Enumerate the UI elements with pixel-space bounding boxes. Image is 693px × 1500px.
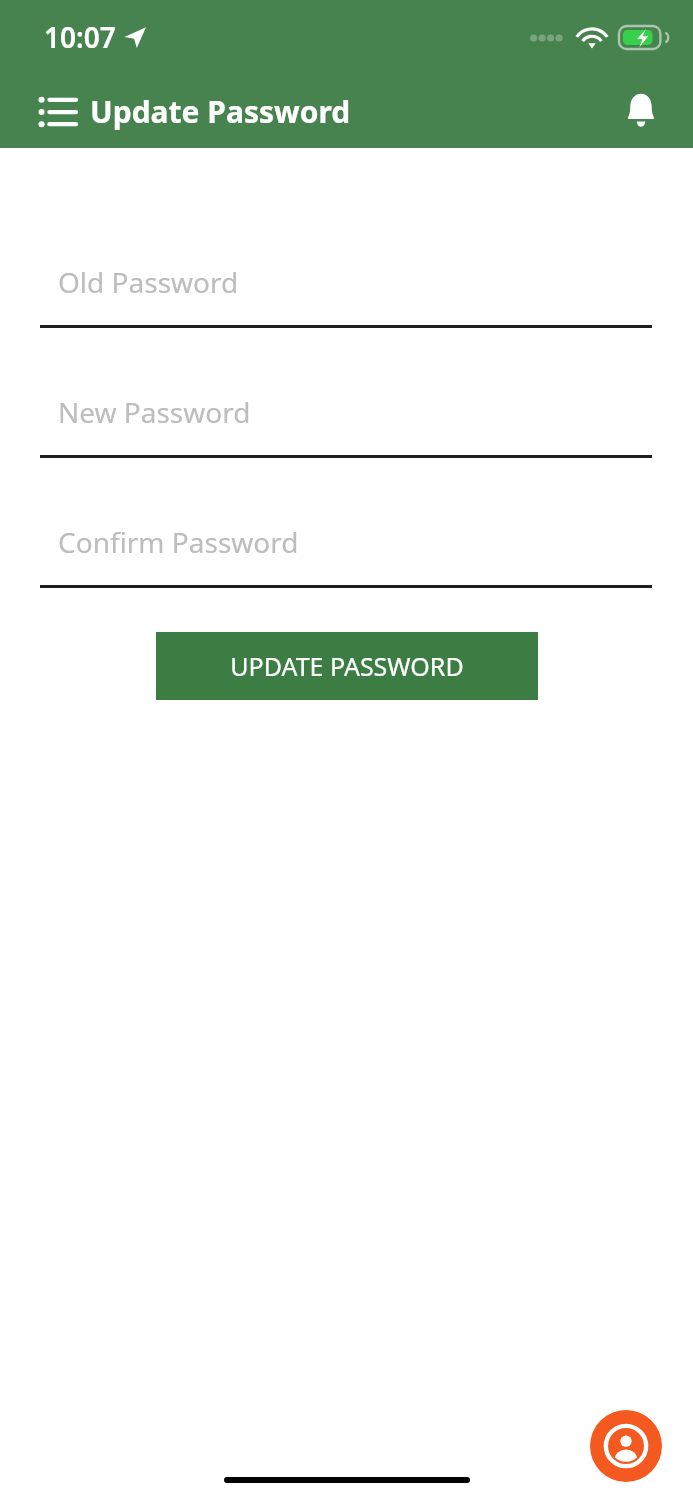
- staticText: Old Password: [58, 263, 239, 301]
- button[interactable]: New Password: [0, 383, 693, 458]
- staticText: UPDATE PASSWORD: [230, 649, 464, 683]
- staticText: New Password: [58, 393, 251, 431]
- button[interactable]: Confirm Password: [0, 513, 693, 588]
- staticText: Update Password: [90, 91, 351, 132]
- button[interactable]: Menu: [30, 83, 359, 140]
- button[interactable]: Notifications: [613, 81, 669, 141]
- staticText: 10:07: [44, 18, 116, 56]
- staticText: Confirm Password: [58, 523, 299, 561]
- button[interactable]: Account: [590, 1410, 662, 1482]
- button[interactable]: Old Password: [0, 253, 693, 328]
- other: Menu: [38, 95, 76, 129]
- button[interactable]: UPDATE PASSWORD: [156, 632, 538, 700]
